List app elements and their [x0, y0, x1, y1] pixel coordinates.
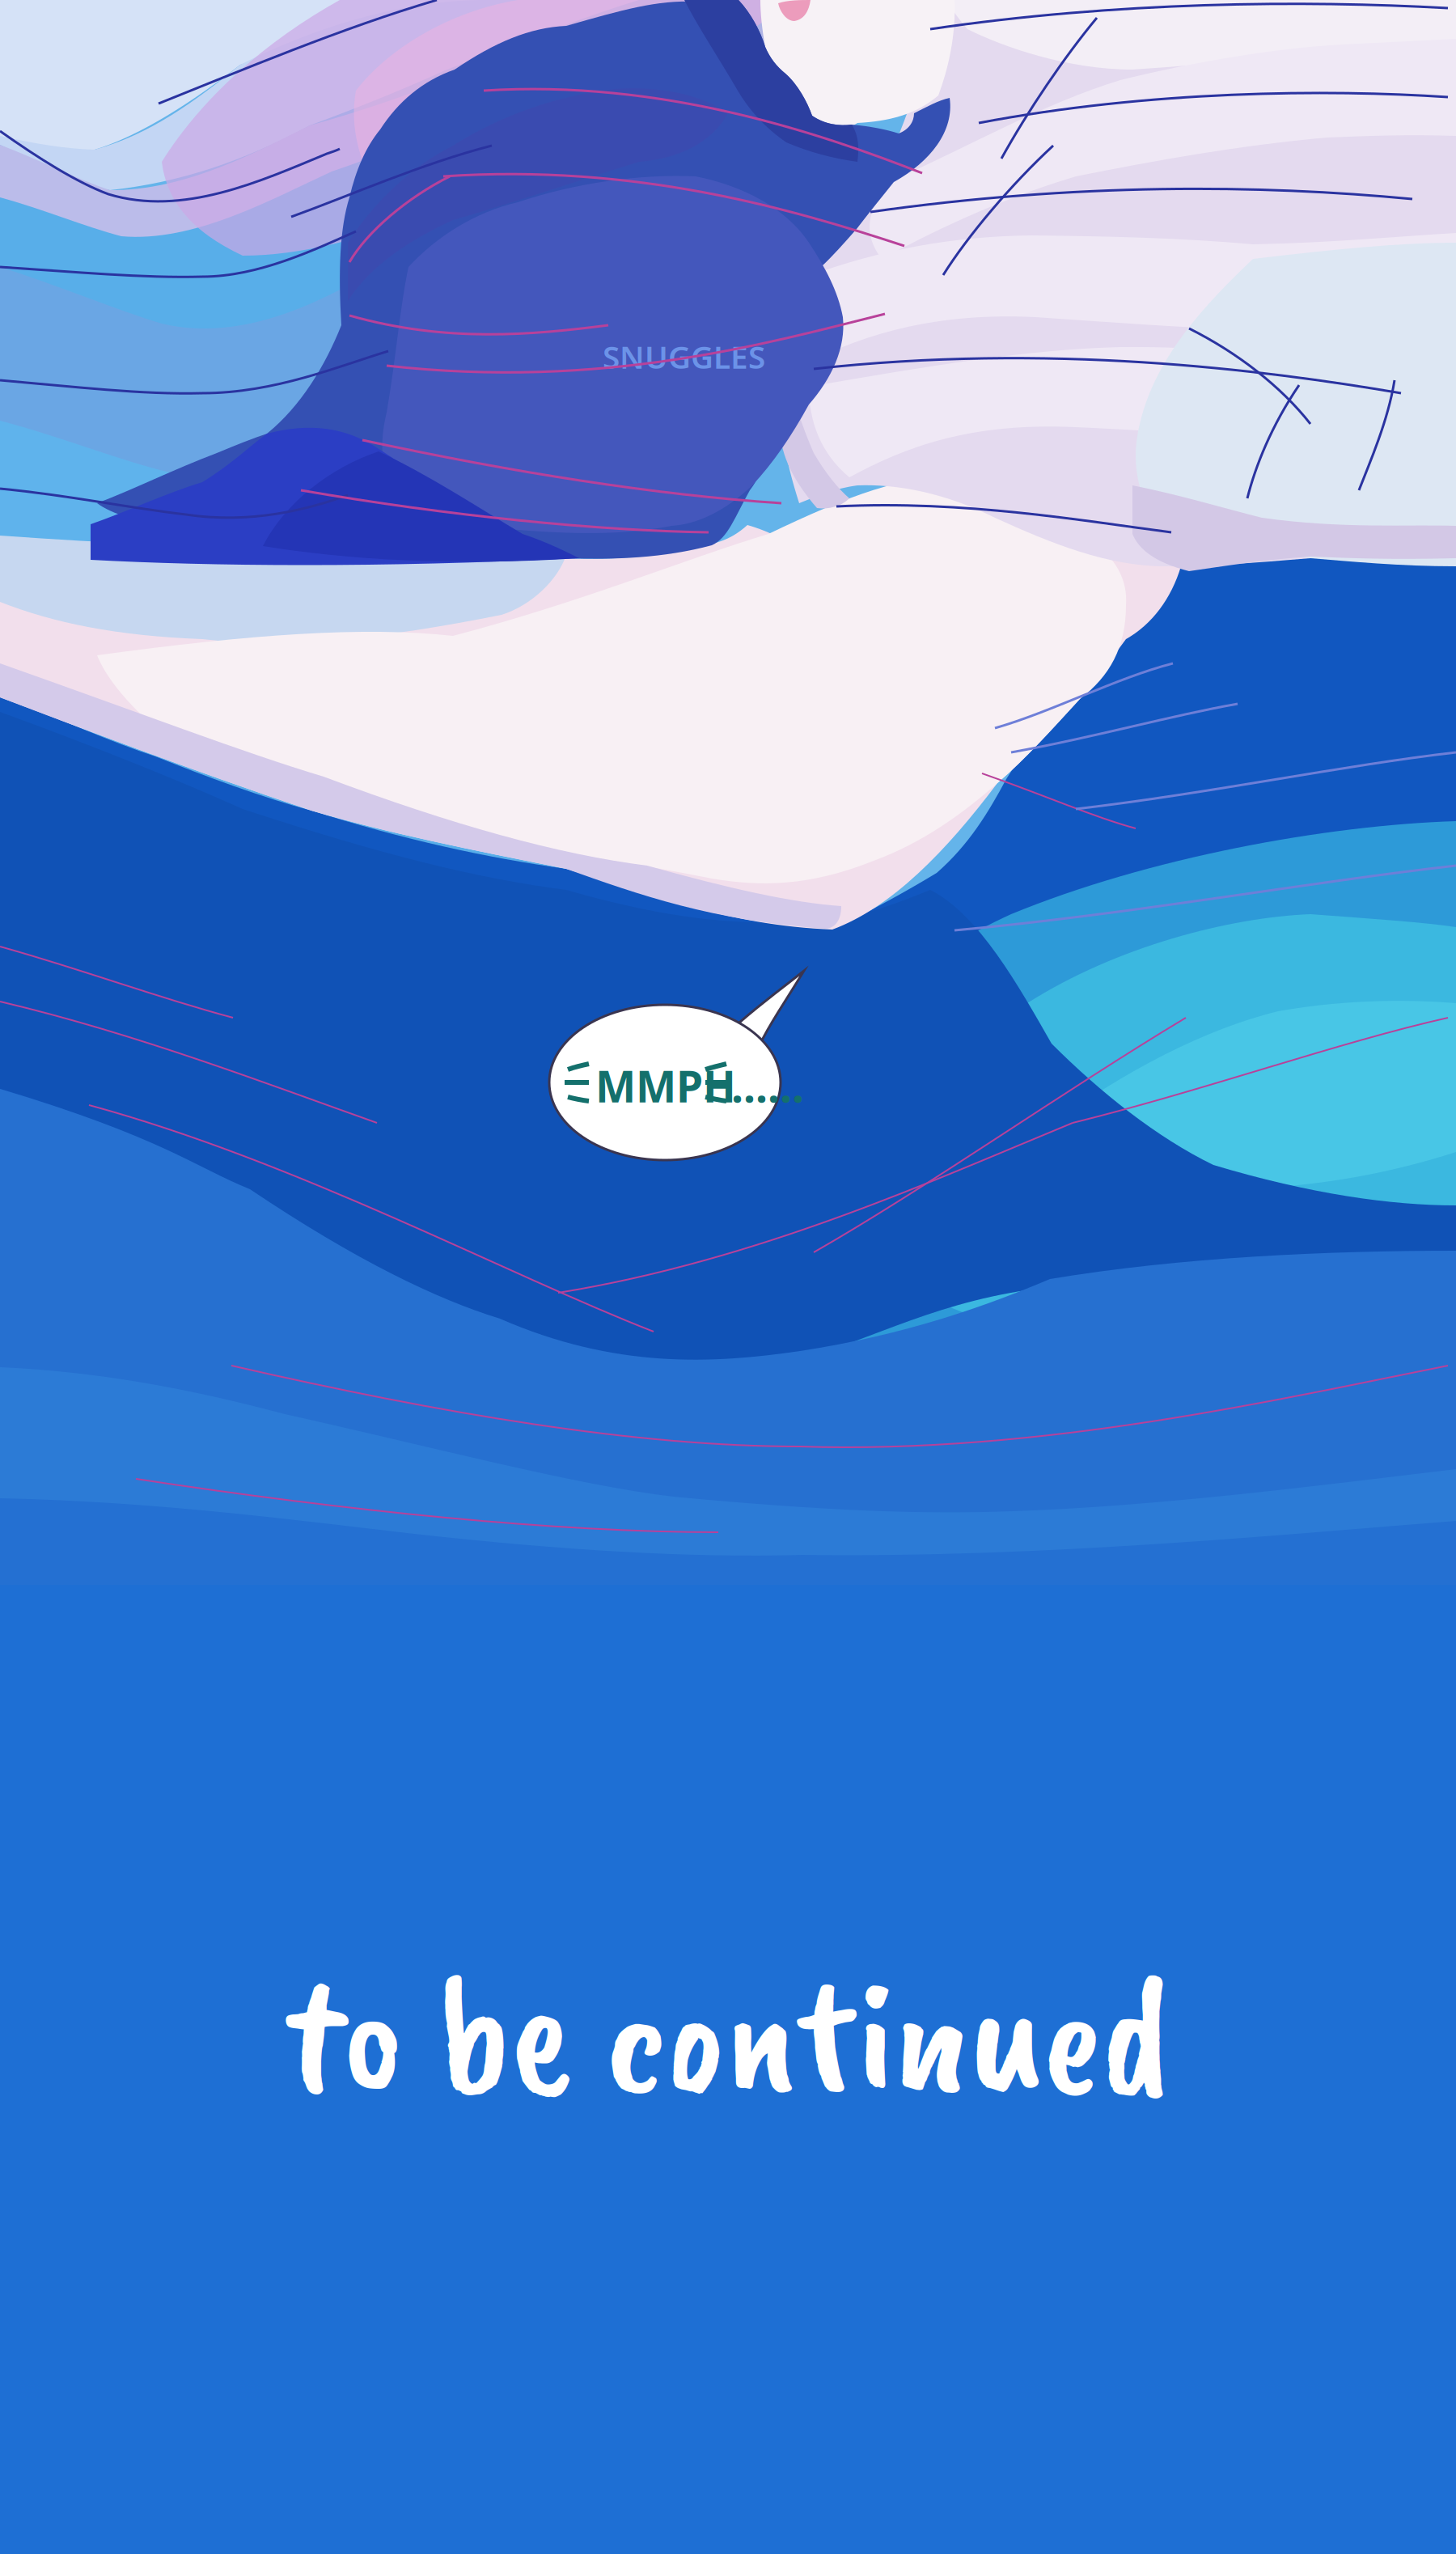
staticText: MMPH	[595, 1057, 736, 1114]
staticText: to be continued	[285, 1933, 1171, 2137]
staticText: ......	[731, 1057, 804, 1114]
staticText: SNUGGLES	[603, 336, 765, 377]
